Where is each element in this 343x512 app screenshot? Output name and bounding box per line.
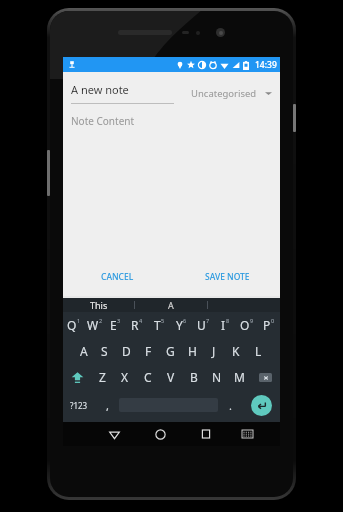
staticText: Z <box>99 369 106 385</box>
button[interactable]: J <box>203 338 225 364</box>
button[interactable]: G <box>159 338 181 364</box>
staticText: I <box>221 317 226 333</box>
staticText: L <box>255 343 262 359</box>
button[interactable]: I <box>214 312 236 338</box>
button[interactable]: Z <box>91 364 113 390</box>
staticText: , <box>106 398 109 413</box>
staticText: O <box>240 317 250 333</box>
button[interactable]: , <box>95 390 119 420</box>
button[interactable]: E <box>105 312 126 338</box>
staticText: S <box>101 343 108 359</box>
button[interactable]: C <box>136 364 159 390</box>
staticText: N <box>212 369 222 385</box>
button[interactable]: O <box>236 312 258 338</box>
button[interactable]: T <box>148 312 170 338</box>
staticText: 3 <box>117 317 121 324</box>
staticText: C <box>144 369 152 385</box>
staticText: SAVE NOTE <box>205 271 250 283</box>
staticText: 0 <box>271 317 275 324</box>
staticText: 4 <box>139 317 143 324</box>
button[interactable]: A <box>73 338 94 364</box>
button[interactable]: R <box>126 312 148 338</box>
button[interactable]: H <box>181 338 203 364</box>
staticText: A <box>168 299 174 311</box>
button[interactable]: Backspace <box>251 364 280 390</box>
staticText: K <box>232 343 240 359</box>
button[interactable]: M <box>228 364 251 390</box>
button[interactable]: P <box>258 312 280 338</box>
staticText: M <box>234 369 245 385</box>
button[interactable]: Back <box>91 422 137 446</box>
button[interactable]: CANCEL <box>93 266 142 288</box>
button[interactable]: Y <box>170 312 192 338</box>
button[interactable]: S <box>94 338 115 364</box>
staticText: 8 <box>226 317 230 324</box>
staticText: J <box>212 343 216 359</box>
staticText: 7 <box>206 317 210 324</box>
staticText: Q <box>67 317 77 333</box>
staticText: R <box>131 317 139 333</box>
button[interactable]: D <box>115 338 137 364</box>
staticText: X <box>121 369 129 385</box>
staticText: D <box>122 343 131 359</box>
button[interactable]: This <box>63 298 134 312</box>
staticText: H <box>188 343 197 359</box>
staticText: A new note <box>71 82 129 97</box>
staticText: 14:39 <box>255 59 277 71</box>
button[interactable]: ?123 <box>63 390 95 420</box>
button[interactable]: B <box>182 364 205 390</box>
button[interactable]: Home <box>137 422 183 446</box>
staticText: 2 <box>99 317 103 324</box>
staticText: G <box>166 343 175 359</box>
staticText: V <box>167 369 175 385</box>
staticText: 1 <box>77 317 81 324</box>
button[interactable]: Uncategorised <box>189 83 274 104</box>
staticText: E <box>110 317 117 333</box>
staticText: W <box>87 317 99 333</box>
button[interactable]: F <box>137 338 159 364</box>
button[interactable]: X <box>113 364 136 390</box>
button[interactable]: N <box>205 364 228 390</box>
staticText: T <box>154 317 161 333</box>
staticText: B <box>190 369 198 385</box>
staticText: F <box>145 343 152 359</box>
staticText: 6 <box>183 317 187 324</box>
staticText: A <box>80 343 88 359</box>
staticText: Uncategorised <box>191 87 257 100</box>
button[interactable]: W <box>84 312 105 338</box>
button[interactable]: V <box>159 364 182 390</box>
button[interactable]: K <box>225 338 247 364</box>
staticText: Y <box>176 317 183 333</box>
button[interactable]: A <box>135 298 207 312</box>
button[interactable]: Shift <box>63 364 91 390</box>
staticText: P <box>263 317 271 333</box>
staticText: 5 <box>161 317 165 324</box>
staticText: U <box>197 317 206 333</box>
button[interactable]: Q <box>63 312 84 338</box>
staticText: 9 <box>250 317 254 324</box>
staticText: CANCEL <box>101 271 134 283</box>
button[interactable]: Recents <box>183 422 229 446</box>
staticText: This <box>90 299 108 311</box>
button[interactable]: U <box>192 312 214 338</box>
staticText: . <box>229 398 232 413</box>
button[interactable]: . <box>218 390 242 420</box>
button[interactable]: SAVE NOTE <box>197 266 258 288</box>
button[interactable]: Enter <box>242 390 280 420</box>
button[interactable]: Note Content <box>71 114 135 128</box>
staticText: ?123 <box>70 400 88 411</box>
button[interactable]: Keyboard <box>229 422 266 446</box>
button[interactable]: L <box>247 338 269 364</box>
